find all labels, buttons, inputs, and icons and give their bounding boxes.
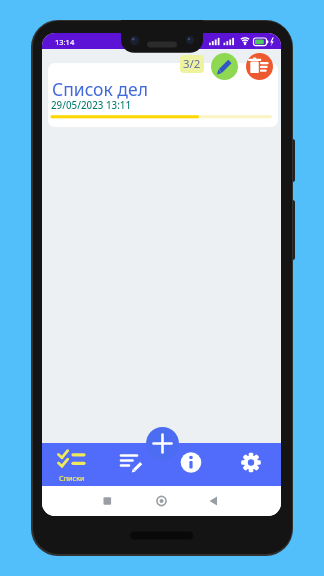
button[interactable] (161, 443, 221, 486)
button[interactable] (246, 53, 273, 80)
staticText: 13:14 (55, 37, 75, 47)
button[interactable] (221, 443, 281, 486)
staticText: 3/2 (183, 56, 201, 72)
staticText: 29/05/2023 13:11 (51, 99, 132, 112)
button[interactable] (146, 427, 179, 460)
button[interactable] (211, 53, 238, 80)
staticText: Список дел (52, 77, 148, 101)
staticText: Списки (59, 473, 85, 483)
button[interactable]: Списки (42, 443, 101, 486)
button[interactable] (101, 443, 161, 486)
